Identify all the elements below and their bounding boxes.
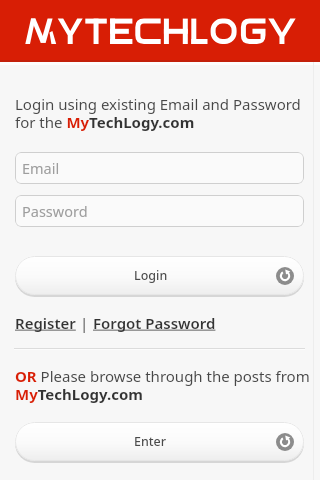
other: Submit: [276, 267, 294, 285]
staticText: Enter: [134, 433, 167, 450]
staticText: Login: [134, 267, 168, 284]
staticText: |: [76, 313, 93, 333]
staticText: Login using existing Email and Password …: [15, 94, 301, 133]
button[interactable]: Enter: [15, 422, 304, 461]
button[interactable]: Register: [15, 313, 76, 333]
button[interactable]: Forgot Password: [93, 313, 216, 333]
staticText: Password: [22, 201, 88, 221]
staticText: OR Please browse through the posts from …: [15, 366, 310, 405]
button[interactable]: Login: [15, 256, 304, 295]
button[interactable]: Password: [15, 195, 304, 227]
other: Submit: [276, 433, 294, 451]
staticText: Email: [22, 158, 60, 178]
button[interactable]: Email: [15, 152, 304, 184]
